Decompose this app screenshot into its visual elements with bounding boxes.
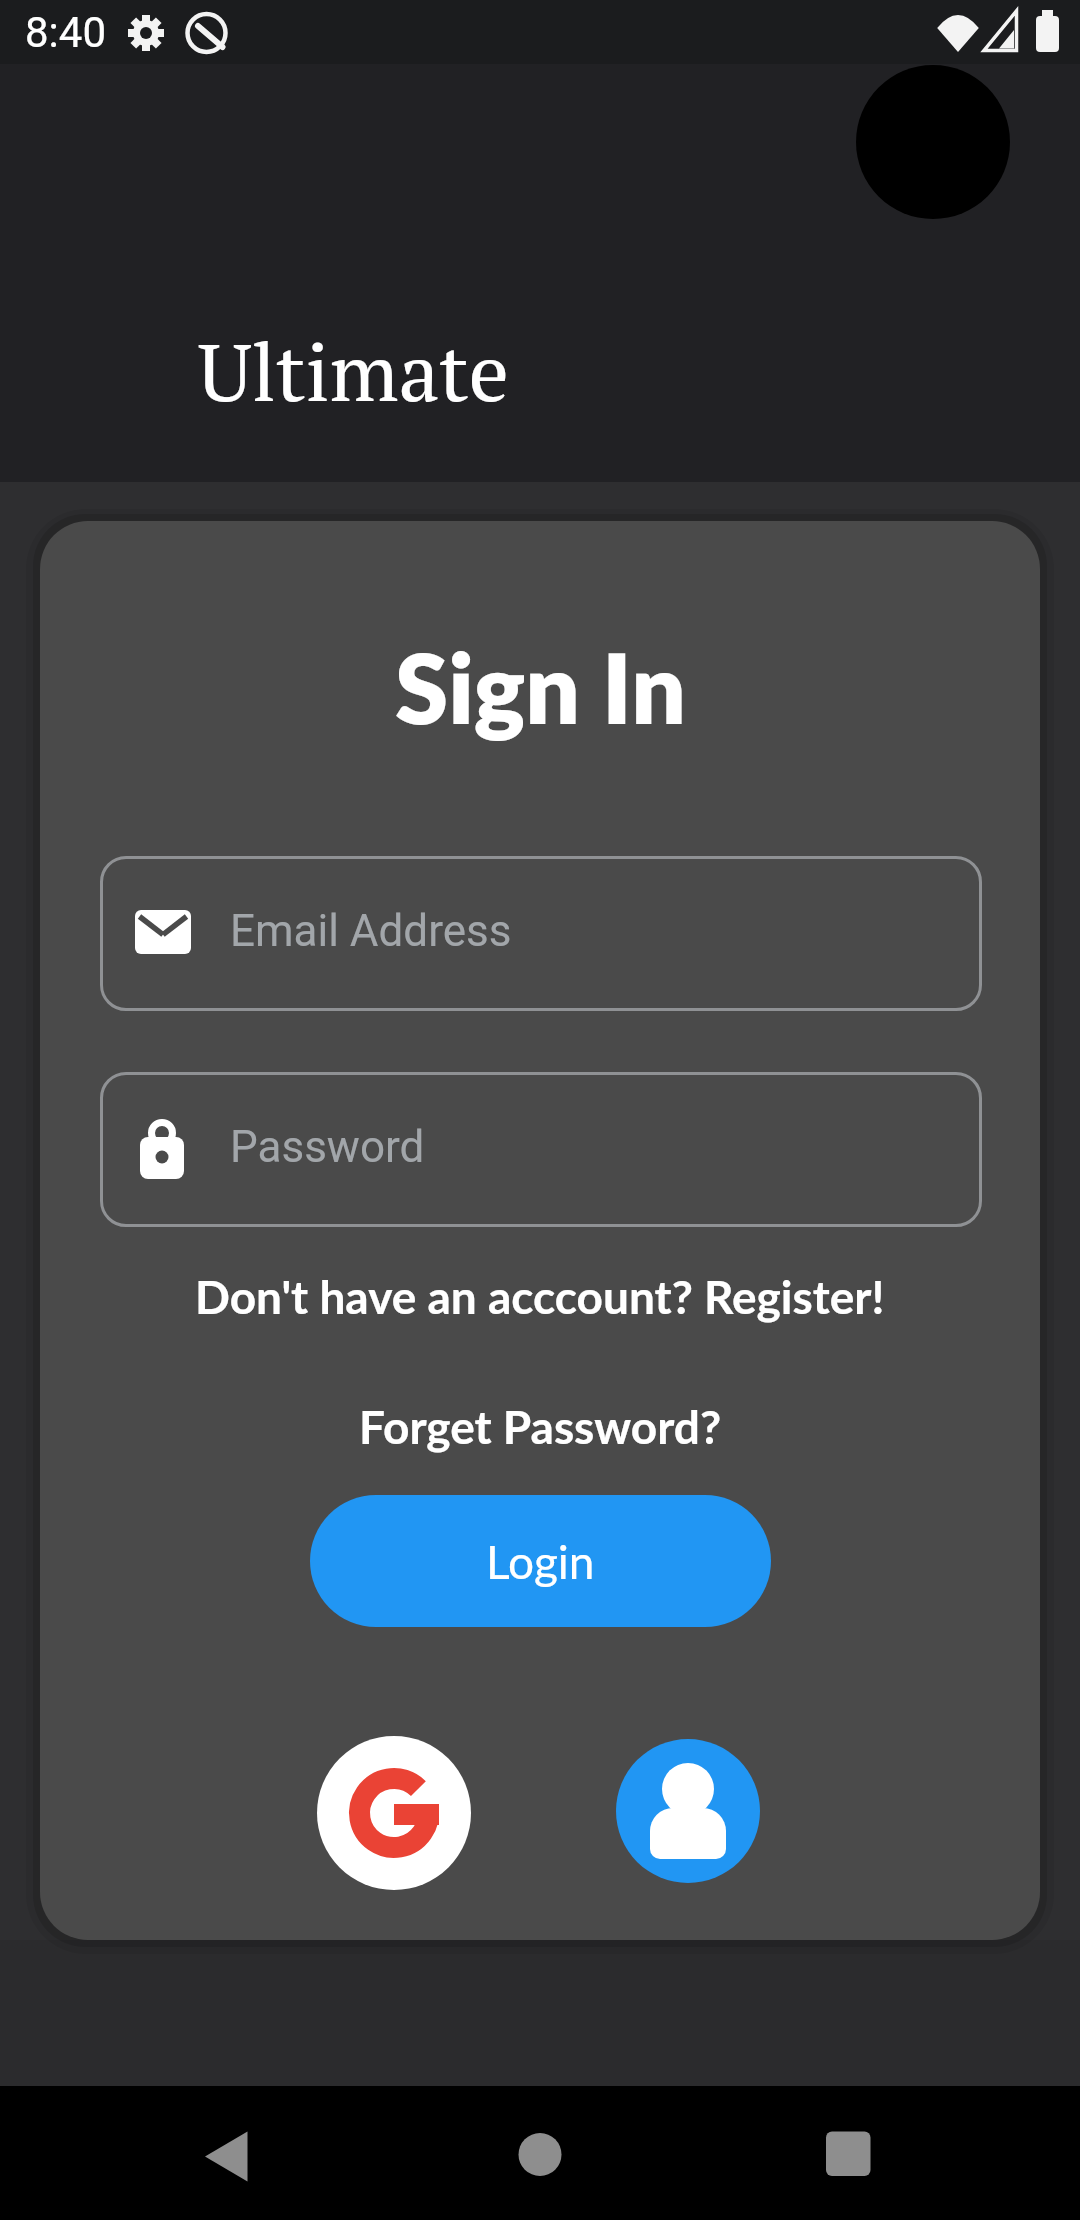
button[interactable] [317,1736,471,1890]
staticText: Password [230,1121,425,1173]
staticText: Forget Password? [359,1399,722,1454]
staticText: Ultimate [198,318,509,424]
button[interactable]: Password [100,1072,982,1227]
staticText: Email Address [230,905,512,957]
button[interactable]: Forget Password? [40,1376,1040,1476]
button[interactable]: Don't have an acccount? Register! [40,1246,1040,1346]
staticText: Login [486,1534,595,1589]
staticText: Don't have an acccount? Register! [195,1269,885,1324]
button[interactable] [856,65,1010,219]
button[interactable] [480,2116,600,2196]
button[interactable] [786,2116,906,2196]
staticText: 8:40 [25,8,106,57]
button[interactable]: Login [310,1495,771,1627]
staticText: Sign In [395,629,686,744]
button[interactable]: Email Address [100,856,982,1011]
button[interactable] [165,2116,285,2196]
button[interactable] [616,1739,760,1883]
